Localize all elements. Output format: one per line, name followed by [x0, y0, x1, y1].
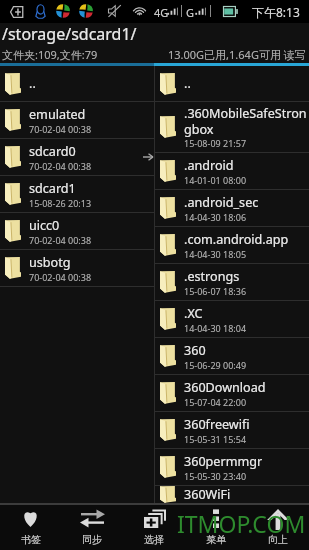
staticText: 15-08-26 20:13	[29, 197, 92, 209]
button[interactable]: Sync	[61, 505, 123, 550]
button[interactable]: 360Download	[155, 375, 309, 412]
staticText: 14-04-30 18:06	[184, 211, 247, 223]
button[interactable]: .XC	[155, 301, 309, 338]
staticText: .com.android.app	[184, 231, 289, 248]
staticText: 书签	[21, 533, 41, 546]
staticText: ..	[29, 75, 36, 92]
staticText: 360Download	[184, 379, 266, 396]
staticText: 下午8:13	[252, 4, 300, 20]
staticText: ..	[184, 75, 191, 92]
staticText: 向上	[268, 533, 288, 546]
staticText: .android	[184, 157, 234, 174]
button[interactable]: .android_sec	[155, 190, 309, 227]
button[interactable]: 360permmgr	[155, 449, 309, 486]
button[interactable]: .android	[155, 153, 309, 190]
staticText: /storage/sdcard1/	[2, 23, 137, 45]
button[interactable]: ..	[0, 66, 154, 102]
staticText: 15-07-04 22:00	[184, 396, 247, 408]
staticText: 14-04-30 18:04	[184, 322, 247, 334]
staticText: ITMOP.COM	[177, 508, 306, 539]
staticText: 同步	[82, 533, 102, 546]
staticText: 选择	[144, 533, 164, 546]
button[interactable]: 360freewifi	[155, 412, 309, 449]
staticText: 360permmgr	[184, 453, 263, 470]
staticText: 13.00G已用,1.64G可用 读写	[168, 47, 306, 62]
button[interactable]: 360WiFi	[155, 486, 309, 503]
staticText: 文件夹:109,文件:79	[2, 47, 98, 62]
staticText: .XC	[184, 305, 203, 322]
staticText: .estrongs	[184, 268, 240, 285]
button[interactable]: 360	[155, 338, 309, 375]
staticText: .360MobileSafeStrongbox	[184, 105, 308, 137]
staticText: 15-05-31 15:54	[184, 433, 247, 445]
button[interactable]: Select	[123, 505, 185, 550]
staticText: 70-02-04 00:38	[29, 160, 92, 172]
staticText: uicc0	[29, 217, 60, 234]
button[interactable]: .estrongs	[155, 264, 309, 301]
staticText: 15-08-09 21:57	[184, 137, 247, 149]
staticText: 70-02-04 00:38	[29, 123, 92, 135]
staticText: 4G	[154, 5, 169, 20]
button[interactable]: .360MobileSafeStrongbox	[155, 102, 309, 153]
button[interactable]: sdcard0	[0, 139, 154, 176]
button[interactable]: Up	[247, 505, 309, 550]
staticText: 70-02-04 00:38	[29, 234, 92, 246]
staticText: 70-02-04 00:38	[29, 271, 92, 283]
staticText: sdcard0	[29, 143, 76, 160]
staticText: usbotg	[29, 254, 71, 271]
staticText: 360freewifi	[184, 416, 250, 433]
button[interactable]: usbotg	[0, 250, 154, 287]
staticText: 15-06-29 00:49	[184, 359, 247, 371]
button[interactable]: .com.android.app	[155, 227, 309, 264]
staticText: G	[186, 5, 195, 20]
staticText: .android_sec	[184, 194, 259, 211]
staticText: 14-01-01 08:00	[184, 174, 247, 186]
button[interactable]: ..	[155, 66, 309, 102]
button[interactable]: Bookmarks	[0, 505, 61, 550]
button[interactable]: Menu	[185, 505, 247, 550]
staticText: 15-06-07 18:36	[184, 285, 247, 297]
staticText: 360	[184, 342, 206, 359]
staticText: 14-04-30 18:05	[184, 248, 247, 260]
button[interactable]: sdcard1	[0, 176, 154, 213]
staticText: 15-05-30 23:40	[184, 470, 247, 482]
staticText: 菜单	[206, 533, 226, 546]
staticText: emulated	[29, 106, 86, 123]
button[interactable]: uicc0	[0, 213, 154, 250]
staticText: 360WiFi	[184, 486, 231, 503]
button[interactable]: emulated	[0, 102, 154, 139]
staticText: sdcard1	[29, 180, 76, 197]
